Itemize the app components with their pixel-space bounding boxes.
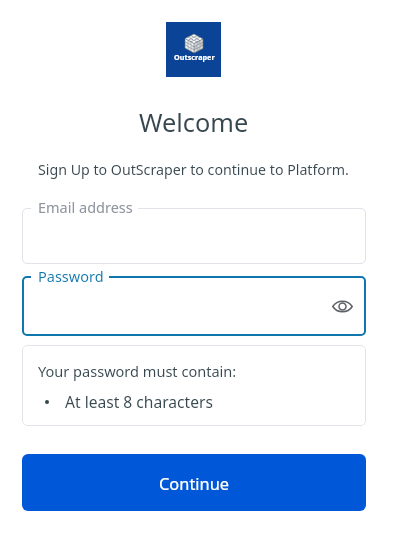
staticText: Continue — [159, 472, 230, 494]
staticText: Welcome — [139, 105, 249, 139]
staticText: Password — [38, 266, 104, 286]
button[interactable]: Email address — [22, 208, 366, 264]
staticText: Your password must contain: — [38, 361, 237, 381]
button[interactable]: Show password — [328, 292, 356, 320]
staticText: Email address — [38, 197, 133, 217]
button[interactable]: Password — [22, 276, 366, 336]
staticText: At least 8 characters — [65, 391, 213, 412]
staticText: Sign Up to OutScraper to continue to Pla… — [38, 160, 349, 179]
staticText: Outscraper — [174, 52, 215, 62]
button[interactable]: Outscraper logo — [166, 22, 221, 77]
button[interactable]: Continue — [22, 454, 366, 511]
